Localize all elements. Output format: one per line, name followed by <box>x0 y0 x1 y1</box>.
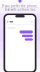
staticText: chat with us there too <box>4 8 35 11</box>
staticText: If you prefer the phone, <box>2 4 38 8</box>
